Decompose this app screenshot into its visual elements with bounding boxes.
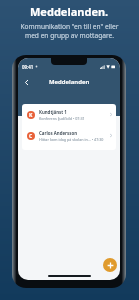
button[interactable]: Nytt meddelande: [103, 258, 117, 272]
button[interactable]: C: [22, 125, 116, 146]
staticText: Konferens ljud/bild • 07:31: [39, 116, 85, 121]
staticText: Meddelanden.: [30, 4, 109, 19]
staticText: Hittar kom idag på skolan in... • 47:30: [39, 137, 104, 142]
staticText: 09:41: [22, 64, 34, 70]
button[interactable]: Tillbaka: [20, 76, 32, 88]
button[interactable]: K: [22, 104, 116, 125]
staticText: Kommunikation "en till en" eller med en …: [20, 22, 119, 40]
staticText: K: [29, 112, 33, 119]
staticText: Meddelanden: [49, 78, 90, 86]
staticText: Kundtjänst 1: [39, 109, 67, 115]
staticText: C: [29, 133, 33, 140]
staticText: Carlos Andersson: [39, 130, 78, 136]
